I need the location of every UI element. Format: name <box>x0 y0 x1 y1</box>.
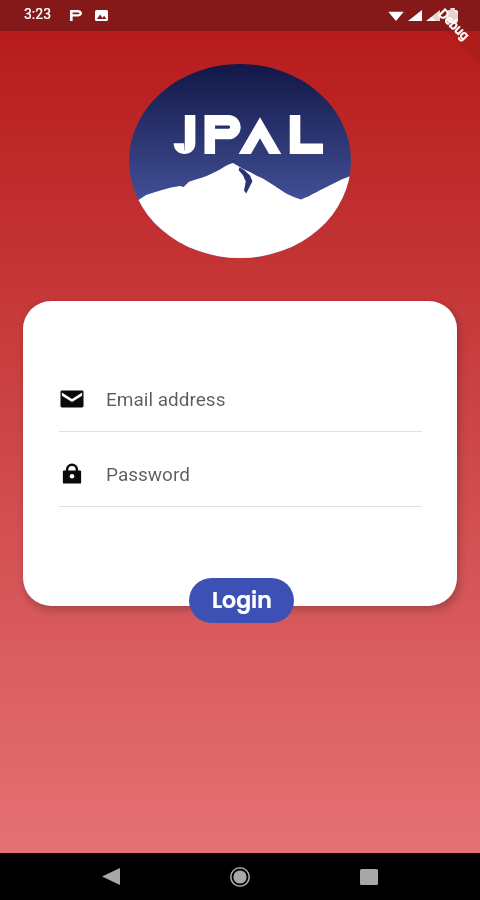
staticText: Password <box>106 463 190 485</box>
staticText: Login <box>212 585 272 616</box>
button[interactable]: Back <box>87 853 135 900</box>
button[interactable]: Login <box>189 578 294 623</box>
button[interactable]: Password <box>59 453 422 495</box>
staticText: Email address <box>106 388 226 410</box>
staticText: Debug <box>435 6 473 43</box>
staticText: 3:23 <box>24 6 51 22</box>
button[interactable]: Recent apps <box>345 853 393 900</box>
button[interactable]: Email address <box>59 378 422 420</box>
button[interactable]: Home <box>216 853 264 900</box>
